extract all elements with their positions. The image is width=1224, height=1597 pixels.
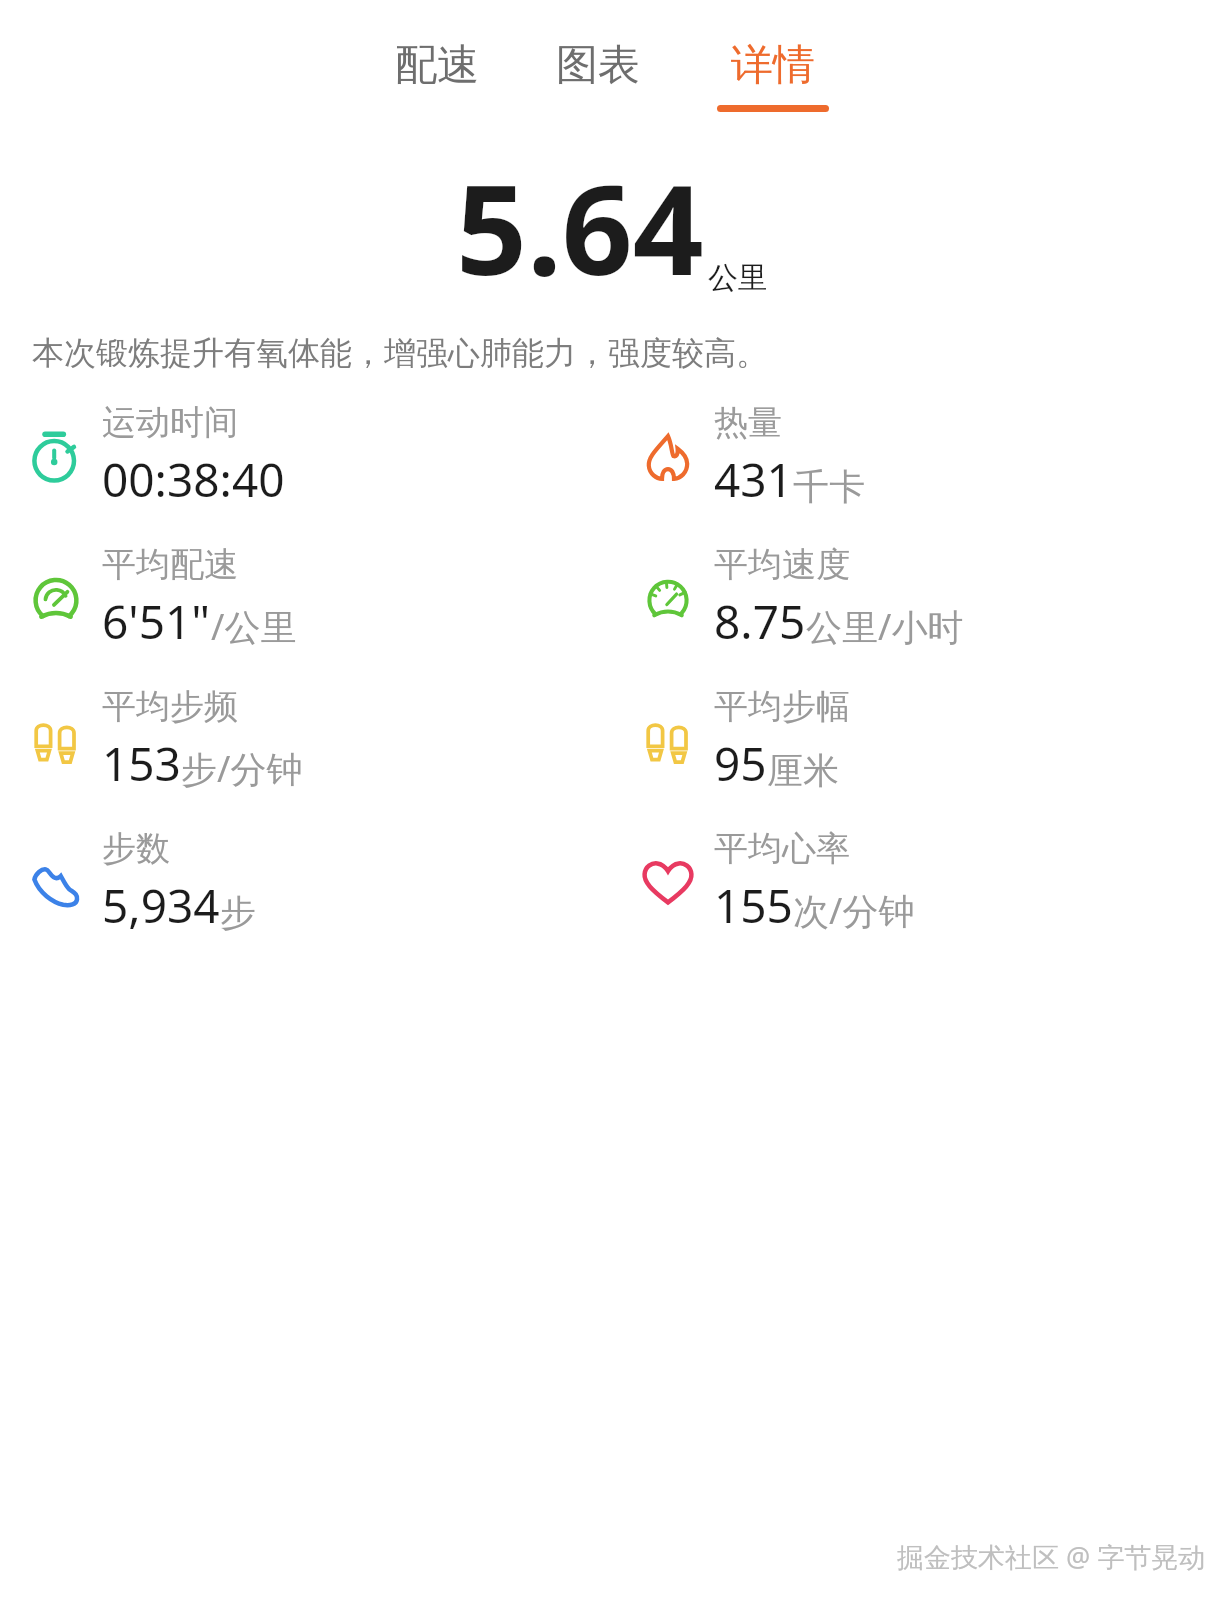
button[interactable]: 平均配速: [0, 539, 612, 657]
staticText: 配速: [395, 39, 479, 92]
button[interactable]: 热量: [612, 397, 1224, 515]
staticText: 运动时间: [102, 401, 238, 444]
other: 平均配速: [26, 568, 86, 628]
staticText: 5,934: [102, 874, 220, 937]
button[interactable]: 详情: [695, 33, 851, 118]
button[interactable]: 配速: [373, 33, 501, 118]
button[interactable]: 平均速度: [612, 539, 1224, 657]
staticText: 次/分钟: [793, 886, 915, 935]
button[interactable]: 图表: [534, 33, 662, 118]
button[interactable]: 平均步频: [0, 681, 612, 799]
staticText: 步数: [102, 827, 170, 870]
staticText: 热量: [714, 401, 782, 444]
staticText: 431: [714, 448, 793, 511]
other: 运动时间: [26, 426, 86, 486]
staticText: 详情: [731, 39, 815, 92]
staticText: 6'51": [102, 590, 211, 653]
other: 平均速度: [638, 568, 698, 628]
other: 步数: [26, 852, 86, 912]
staticText: 00:38:40: [102, 448, 285, 511]
other: 热量: [638, 426, 698, 486]
button[interactable]: 步数: [0, 823, 612, 941]
staticText: 图表: [556, 39, 640, 92]
staticText: 95: [714, 732, 767, 795]
staticText: 平均速度: [714, 543, 850, 586]
staticText: 掘金技术社区 @ 字节晃动: [897, 1538, 1206, 1575]
staticText: 5.64: [456, 142, 704, 311]
staticText: 本次锻炼提升有氧体能，增强心肺能力，强度较高。: [32, 333, 768, 373]
staticText: 公里: [708, 259, 768, 297]
staticText: /公里: [211, 602, 297, 651]
staticText: 步: [220, 890, 256, 935]
staticText: 平均配速: [102, 543, 238, 586]
staticText: 千卡: [793, 464, 865, 509]
button[interactable]: 平均心率: [612, 823, 1224, 941]
staticText: 步/分钟: [181, 744, 303, 793]
button[interactable]: 平均步幅: [612, 681, 1224, 799]
staticText: 153: [102, 732, 181, 795]
staticText: 厘米: [767, 748, 839, 793]
other: 平均心率: [638, 852, 698, 912]
staticText: 平均步幅: [714, 685, 850, 728]
staticText: 155: [714, 874, 793, 937]
button[interactable]: 运动时间: [0, 397, 612, 515]
staticText: 公里/小时: [806, 602, 964, 651]
other: 平均步幅: [638, 710, 698, 770]
other: 平均步频: [26, 710, 86, 770]
staticText: 平均心率: [714, 827, 850, 870]
staticText: 8.75: [714, 590, 806, 653]
staticText: 平均步频: [102, 685, 238, 728]
